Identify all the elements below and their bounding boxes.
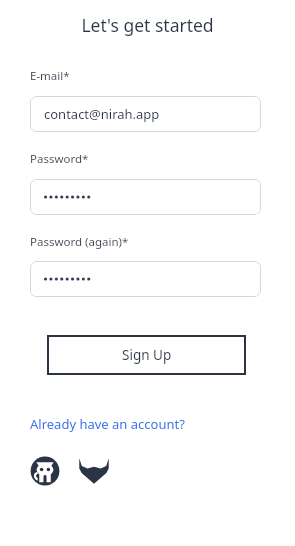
button[interactable] [30,179,261,215]
staticText: contact@nirah.app [44,105,160,123]
button[interactable]: Sign in with GitLab [78,455,110,487]
staticText: Password* [30,151,89,167]
button[interactable]: Already have an account? [30,415,185,433]
staticText: E-mail* [30,68,70,84]
button[interactable]: contact@nirah.app [30,96,261,132]
button[interactable]: Sign in with GitHub [30,456,60,486]
staticText: Already have an account? [30,415,185,433]
staticText: Let's get started [81,13,214,37]
button[interactable]: Sign Up [47,335,246,375]
button[interactable] [30,261,261,297]
staticText: Sign Up [122,346,172,364]
staticText: Password (again)* [30,234,129,250]
